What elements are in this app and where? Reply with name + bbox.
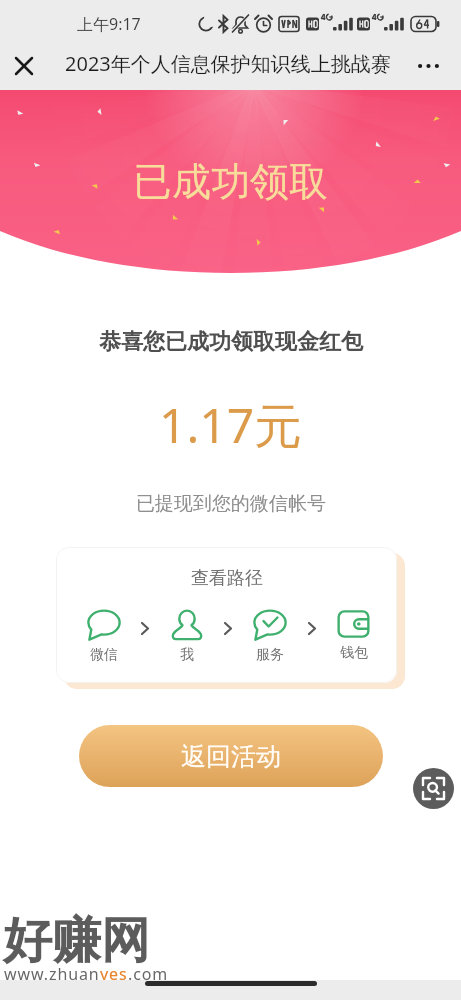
staticText: 好赚网: [3, 910, 150, 972]
button[interactable]: 微信: [78, 610, 130, 674]
staticText: 2023年个人信息保护知识线上挑战赛: [65, 50, 391, 77]
staticText: 1.17元: [159, 392, 303, 458]
staticText: 返回活动: [181, 741, 281, 772]
staticText: 上午9:17: [77, 13, 141, 35]
button[interactable]: 查看路径: [56, 547, 397, 683]
button[interactable]: 我: [161, 610, 213, 674]
staticText: 恭喜您已成功领取现金红包: [99, 328, 363, 356]
staticText: 钱包: [340, 644, 368, 662]
staticText: yes: [100, 963, 128, 985]
staticText: www.zhuan: [4, 963, 100, 985]
staticText: 微信: [90, 646, 118, 664]
staticText: 我: [180, 646, 194, 664]
button[interactable]: Scan: [413, 768, 454, 809]
staticText: 已提现到您的微信帐号: [136, 492, 326, 516]
button[interactable]: 返回活动: [79, 725, 383, 787]
staticText: 服务: [256, 646, 284, 664]
staticText: 查看路径: [191, 567, 263, 590]
staticText: 已成功领取: [133, 157, 328, 206]
button[interactable]: More options: [405, 41, 452, 91]
staticText: .com: [128, 963, 169, 985]
button[interactable]: Close: [0, 41, 48, 91]
button[interactable]: 服务: [244, 610, 296, 674]
button[interactable]: 钱包: [327, 610, 379, 674]
